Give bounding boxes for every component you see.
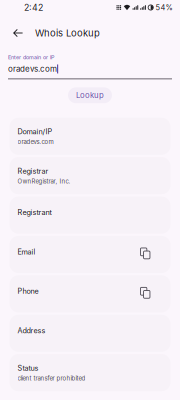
staticText: oradevs.com bbox=[17, 138, 53, 145]
staticText: Email bbox=[17, 247, 35, 256]
button[interactable]: Copy Email bbox=[138, 236, 152, 261]
button[interactable]: Copy Phone bbox=[138, 275, 152, 300]
staticText: Registrant bbox=[17, 208, 51, 217]
staticText: Phone bbox=[17, 287, 38, 296]
staticText: client transfer prohibited bbox=[17, 375, 85, 382]
staticText: Registrar bbox=[17, 167, 48, 175]
staticText: 54% bbox=[155, 3, 172, 12]
staticText: Address bbox=[17, 326, 45, 335]
staticText: oradevs.com bbox=[8, 64, 57, 74]
staticText: Lookup bbox=[76, 91, 104, 100]
staticText: OwnRegistrar, Inc. bbox=[17, 178, 70, 185]
staticText: Whois Lookup bbox=[35, 27, 100, 39]
staticText: Enter domain or IP bbox=[8, 54, 54, 61]
button[interactable]: Back bbox=[8, 22, 28, 44]
button[interactable]: Lookup bbox=[68, 87, 112, 103]
staticText: Status bbox=[17, 364, 38, 372]
staticText: 2:42 bbox=[24, 2, 43, 13]
staticText: Domain/IP bbox=[17, 127, 52, 136]
